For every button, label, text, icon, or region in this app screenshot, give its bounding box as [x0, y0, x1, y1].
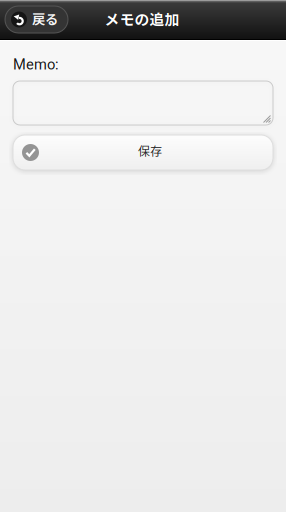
button[interactable]: 保存 — [13, 135, 273, 170]
button[interactable]: 戻る — [5, 6, 68, 33]
staticText: メモの追加 — [104, 8, 179, 29]
staticText: Memo: — [13, 56, 59, 73]
staticText: 保存 — [138, 142, 162, 159]
staticText: 戻る — [32, 9, 58, 28]
